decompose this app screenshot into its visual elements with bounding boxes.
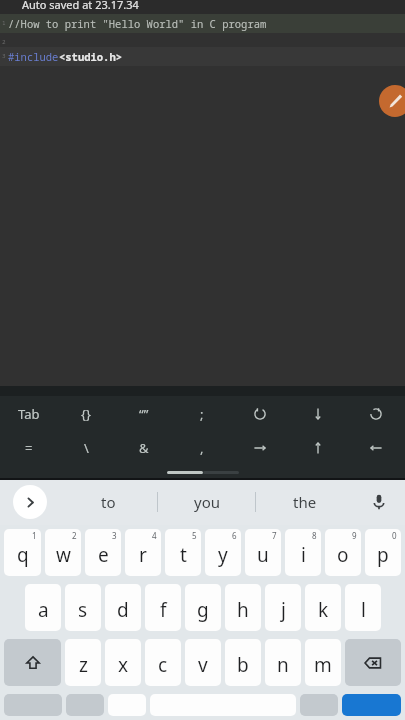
button[interactable]: Move up [289, 396, 347, 432]
button[interactable]: Move left [231, 432, 289, 464]
staticText: z [79, 652, 88, 678]
button[interactable] [66, 694, 104, 716]
staticText: v [198, 652, 208, 678]
button[interactable]: = [0, 432, 57, 464]
staticText: e [98, 542, 109, 568]
staticText: o [337, 542, 349, 568]
button[interactable] [342, 694, 401, 716]
staticText: l [361, 597, 366, 623]
button[interactable]: y [205, 529, 241, 576]
staticText: f [160, 597, 167, 623]
button[interactable]: n [265, 639, 301, 686]
staticText: 0 [392, 530, 397, 541]
button[interactable] [4, 694, 62, 716]
button[interactable]: m [305, 639, 341, 686]
staticText: 9 [352, 530, 357, 541]
button[interactable]: Tab [0, 396, 57, 432]
staticText: 6 [232, 530, 237, 541]
button[interactable]: l [345, 584, 381, 631]
button[interactable]: i [285, 529, 321, 576]
staticText: 4 [152, 530, 157, 541]
button[interactable]: q [4, 529, 41, 576]
button[interactable]: g [185, 584, 221, 631]
button[interactable]: , [173, 432, 231, 464]
button[interactable]: the [256, 478, 353, 525]
button[interactable]: x [105, 639, 141, 686]
button[interactable]: b [225, 639, 261, 686]
staticText: 2 [2, 38, 6, 46]
button[interactable]: ; [173, 396, 231, 432]
button[interactable]: Redo [347, 396, 405, 432]
button[interactable]: Move right [347, 432, 405, 464]
button[interactable]: j [265, 584, 301, 631]
staticText: s [78, 597, 88, 623]
staticText: h [237, 597, 249, 623]
button[interactable]: Shift [4, 639, 61, 686]
button[interactable]: to [60, 478, 157, 525]
button[interactable]: f [145, 584, 181, 631]
staticText: r [139, 542, 147, 568]
staticText: t [180, 542, 187, 568]
staticText: m [314, 652, 332, 678]
button[interactable]: z [65, 639, 101, 686]
staticText: 2 [72, 530, 77, 541]
button[interactable]: e [85, 529, 121, 576]
staticText: q [17, 542, 29, 568]
staticText: “” [139, 405, 149, 423]
other: Move right [368, 440, 384, 456]
button[interactable]: you [158, 478, 255, 525]
button[interactable]: w [45, 529, 81, 576]
staticText: 5 [192, 530, 197, 541]
staticText: = [25, 439, 33, 457]
staticText: 8 [312, 530, 317, 541]
staticText: x [118, 652, 129, 678]
button[interactable]: Voice input [353, 478, 405, 525]
staticText: k [318, 597, 329, 623]
button[interactable]: k [305, 584, 341, 631]
button[interactable]: c [145, 639, 181, 686]
staticText: a [38, 597, 49, 623]
other: Move left [252, 440, 268, 456]
staticText: to [101, 492, 116, 512]
staticText: #include [8, 50, 59, 64]
button[interactable]: o [325, 529, 361, 576]
button[interactable]: Undo [231, 396, 289, 432]
button[interactable]: & [115, 432, 173, 464]
staticText: ; [200, 405, 204, 423]
button[interactable]: h [225, 584, 261, 631]
button[interactable]: a [25, 584, 61, 631]
staticText: \ [84, 439, 89, 457]
staticText: 3 [112, 530, 117, 541]
button[interactable]: Expand suggestions [13, 485, 47, 519]
button[interactable]: Move down [289, 432, 347, 464]
button[interactable] [300, 694, 338, 716]
staticText: 1 [2, 19, 6, 27]
button[interactable]: t [165, 529, 201, 576]
button[interactable]: Backspace [345, 639, 401, 686]
button[interactable]: d [105, 584, 141, 631]
button[interactable]: s [65, 584, 101, 631]
staticText: {} [81, 405, 91, 423]
staticText: , [200, 439, 204, 457]
button[interactable]: r [125, 529, 161, 576]
staticText: g [197, 597, 209, 623]
staticText: i [301, 542, 306, 568]
button[interactable]: Edit [379, 85, 405, 117]
staticText: y [218, 542, 228, 568]
button[interactable]: u [245, 529, 281, 576]
button[interactable]: “” [115, 396, 173, 432]
button[interactable]: {} [57, 396, 115, 432]
staticText: 7 [272, 530, 277, 541]
other: Undo [252, 406, 268, 422]
staticText: b [237, 652, 249, 678]
button[interactable]: \ [57, 432, 115, 464]
button[interactable] [108, 694, 146, 716]
staticText: d [117, 597, 129, 623]
button[interactable]: p [365, 529, 401, 576]
staticText: //How to print "Hello World" in C progra… [8, 17, 267, 31]
staticText: p [377, 542, 389, 568]
staticText: 1 [32, 530, 37, 541]
staticText: c [158, 652, 168, 678]
button[interactable]: v [185, 639, 221, 686]
